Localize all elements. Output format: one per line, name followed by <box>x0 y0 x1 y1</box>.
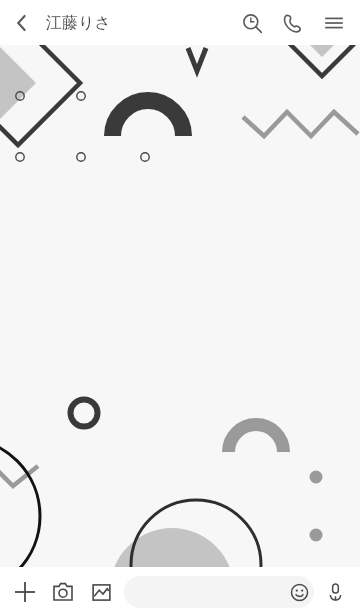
button[interactable]: Search <box>232 3 272 43</box>
button[interactable]: Emoji <box>124 576 314 608</box>
other: Emoji <box>284 577 314 607</box>
staticText: 江藤りさ <box>46 13 111 33</box>
button[interactable]: Back <box>0 1 44 45</box>
button[interactable]: Menu <box>312 1 356 45</box>
button[interactable]: Call <box>272 3 312 43</box>
button[interactable]: Camera <box>44 573 82 611</box>
button[interactable]: Gallery <box>82 573 120 611</box>
button[interactable]: Voice message <box>316 573 354 611</box>
button[interactable]: Add <box>6 573 44 611</box>
